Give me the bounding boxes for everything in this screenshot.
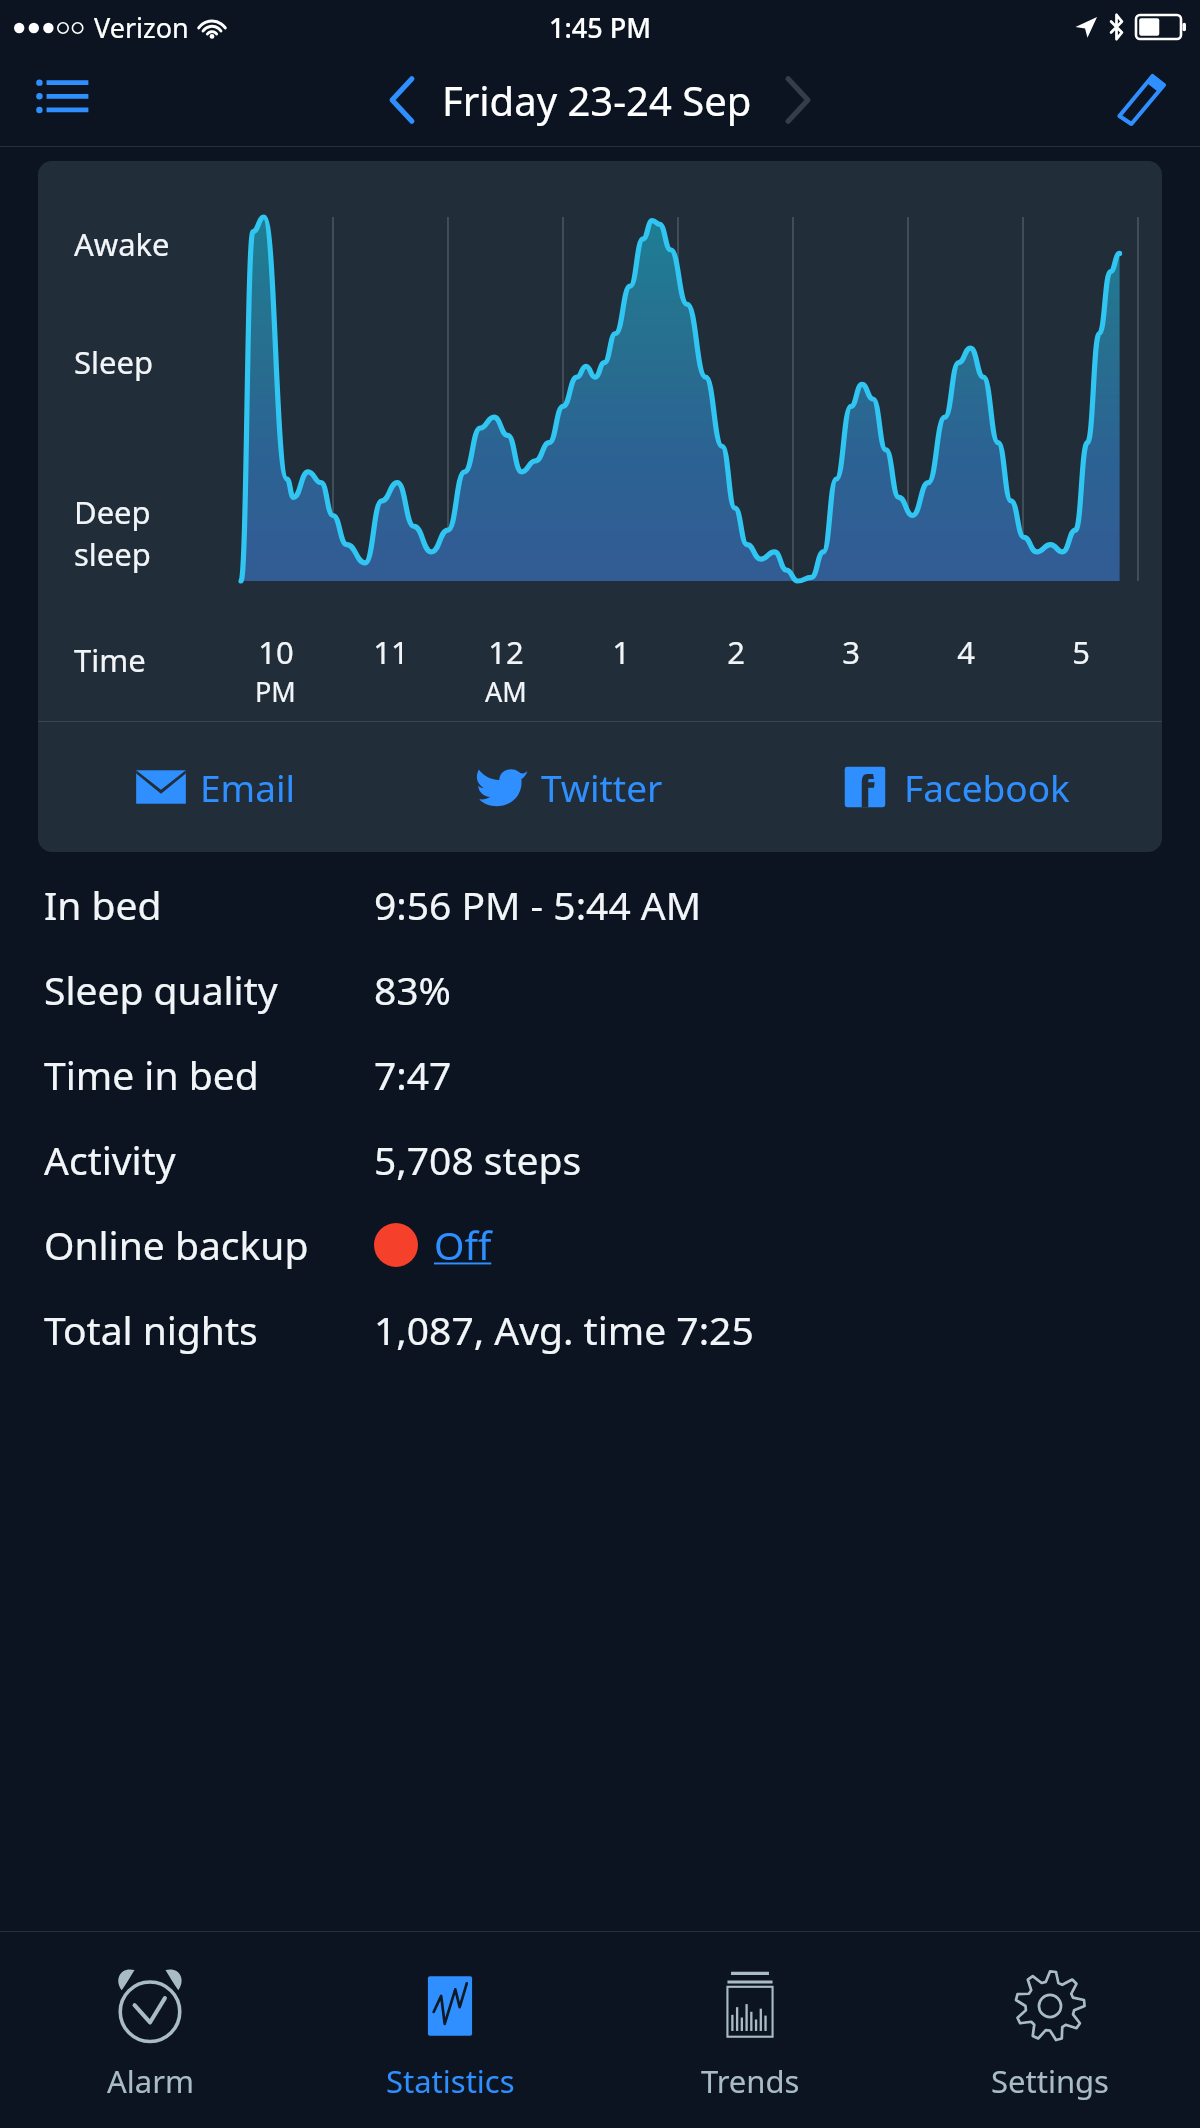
staticText: In bed	[44, 878, 162, 931]
staticText: AM	[485, 673, 527, 710]
staticText: 11	[373, 631, 409, 673]
staticText: 1,087, Avg. time 7:25	[374, 1303, 754, 1356]
staticText: Verizon	[94, 9, 189, 46]
staticText: 4	[957, 631, 975, 673]
staticText: 2	[727, 631, 745, 673]
staticText: Off	[434, 1218, 492, 1271]
button[interactable]: Email	[38, 722, 392, 852]
button[interactable]: Edit	[1104, 63, 1178, 137]
staticText: 7:47	[374, 1048, 452, 1101]
staticText: Time in bed	[44, 1048, 259, 1101]
button[interactable]: Time in bed	[44, 1032, 1176, 1117]
staticText: Sleep quality	[44, 963, 278, 1016]
button[interactable]: Next day	[768, 70, 828, 130]
staticText: Sleep	[74, 341, 154, 383]
staticText: Twitter	[541, 762, 663, 812]
staticText: Deep	[74, 491, 151, 533]
staticText: Statistics	[386, 2060, 515, 2102]
button[interactable]: Alarm	[0, 1932, 300, 2128]
staticText: 10	[258, 631, 294, 673]
staticText: sleep	[74, 533, 151, 575]
button[interactable]: Online backup	[44, 1202, 1176, 1287]
staticText: Trends	[701, 2060, 800, 2102]
staticText: Awake	[74, 223, 170, 265]
button[interactable]: In bed	[44, 862, 1176, 947]
staticText: 9:56 PM - 5:44 AM	[374, 878, 702, 931]
staticText: Settings	[991, 2060, 1109, 2102]
button[interactable]: Statistics	[300, 1932, 600, 2128]
staticText: Time	[74, 639, 146, 681]
button[interactable]: Total nights	[44, 1287, 1176, 1372]
button[interactable]: Menu	[24, 63, 98, 137]
button[interactable]: Activity	[44, 1117, 1176, 1202]
staticText: Friday 23-24 Sep	[442, 73, 752, 127]
button[interactable]: Facebook	[745, 722, 1162, 852]
staticText: 5,708 steps	[374, 1133, 582, 1186]
staticText: 12	[488, 631, 524, 673]
staticText: Activity	[44, 1133, 176, 1186]
staticText: Email	[200, 762, 296, 812]
button[interactable]: Previous day	[372, 70, 432, 130]
staticText: 83%	[374, 963, 452, 1016]
button[interactable]: Settings	[900, 1932, 1200, 2128]
staticText: 1:45 PM	[549, 9, 651, 46]
staticText: Total nights	[44, 1303, 258, 1356]
staticText: Online backup	[44, 1218, 309, 1271]
staticText: 3	[842, 631, 860, 673]
staticText: 1	[612, 631, 630, 673]
staticText: PM	[255, 673, 296, 710]
button[interactable]: Twitter	[392, 722, 745, 852]
staticText: Facebook	[904, 762, 1070, 812]
button[interactable]: Trends	[600, 1932, 900, 2128]
staticText: 5	[1072, 631, 1090, 673]
button[interactable]: Sleep quality	[44, 947, 1176, 1032]
staticText: Alarm	[107, 2060, 194, 2102]
